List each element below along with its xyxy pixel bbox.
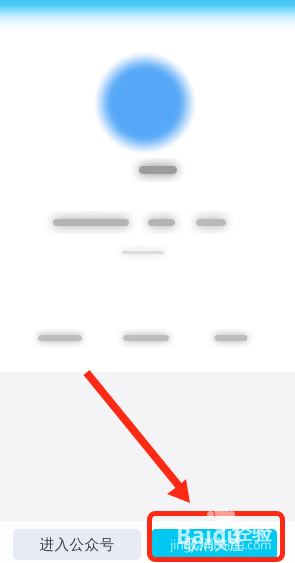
- button[interactable]: 取消关注: [151, 529, 277, 560]
- staticText: 经验: [232, 521, 272, 546]
- staticText: 进入公众号: [39, 535, 114, 553]
- button[interactable]: 进入公众号: [13, 529, 141, 560]
- button[interactable]: [14, 320, 106, 356]
- staticText: Baidu: [176, 520, 241, 550]
- staticText: jingyan.baidu.com: [170, 537, 271, 553]
- button[interactable]: [185, 320, 277, 356]
- staticText: 取消关注: [184, 535, 244, 553]
- button[interactable]: [100, 320, 192, 356]
